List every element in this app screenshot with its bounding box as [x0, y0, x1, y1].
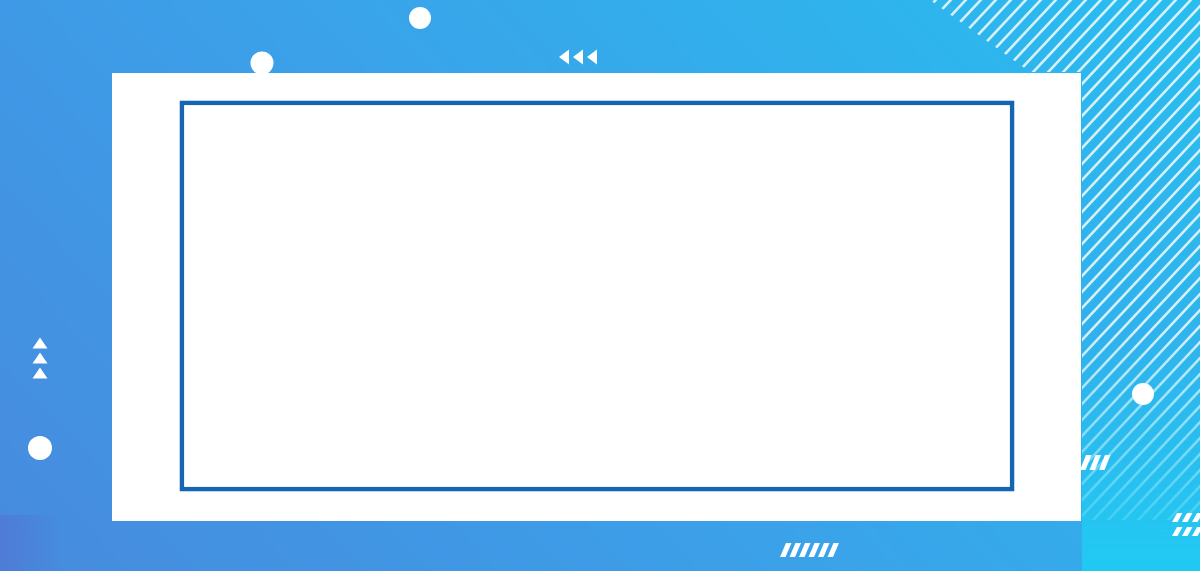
button[interactable]: Decorative blue banner with framed conte…: [0, 0, 1200, 571]
